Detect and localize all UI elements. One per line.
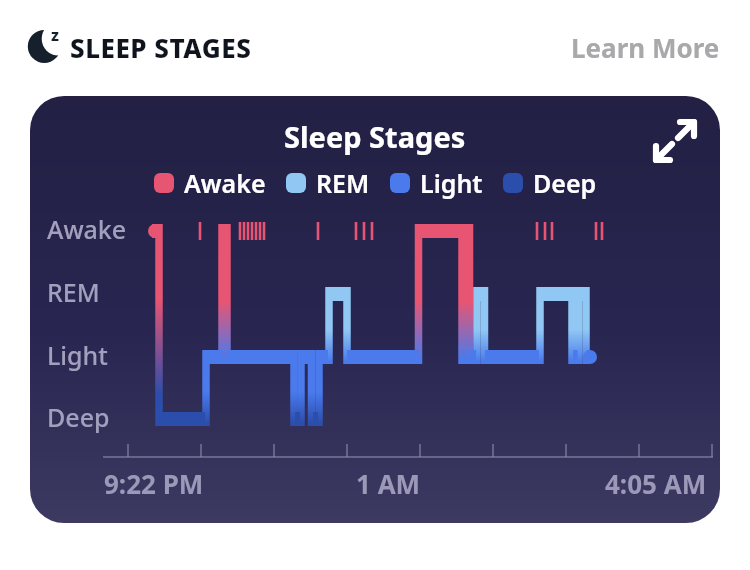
- staticText: Light: [420, 166, 483, 200]
- staticText: Deep: [47, 400, 110, 434]
- button[interactable]: Light: [390, 166, 483, 200]
- button[interactable]: Awake: [154, 166, 266, 200]
- staticText: Awake: [184, 166, 266, 200]
- staticText: SLEEP STAGES: [70, 30, 252, 65]
- staticText: Awake: [47, 212, 127, 246]
- staticText: REM: [47, 275, 100, 309]
- button[interactable]: Learn More: [571, 30, 720, 65]
- button[interactable]: REM: [286, 166, 370, 200]
- button[interactable]: Deep: [503, 166, 597, 200]
- staticText: Light: [47, 338, 108, 372]
- staticText: 9:22 PM: [104, 466, 204, 501]
- staticText: 4:05 AM: [605, 466, 707, 501]
- button[interactable]: [640, 105, 700, 165]
- staticText: Sleep Stages: [284, 117, 466, 156]
- staticText: Deep: [533, 166, 597, 200]
- staticText: 1 AM: [356, 466, 421, 501]
- staticText: REM: [316, 166, 370, 200]
- staticText: z: [51, 24, 59, 46]
